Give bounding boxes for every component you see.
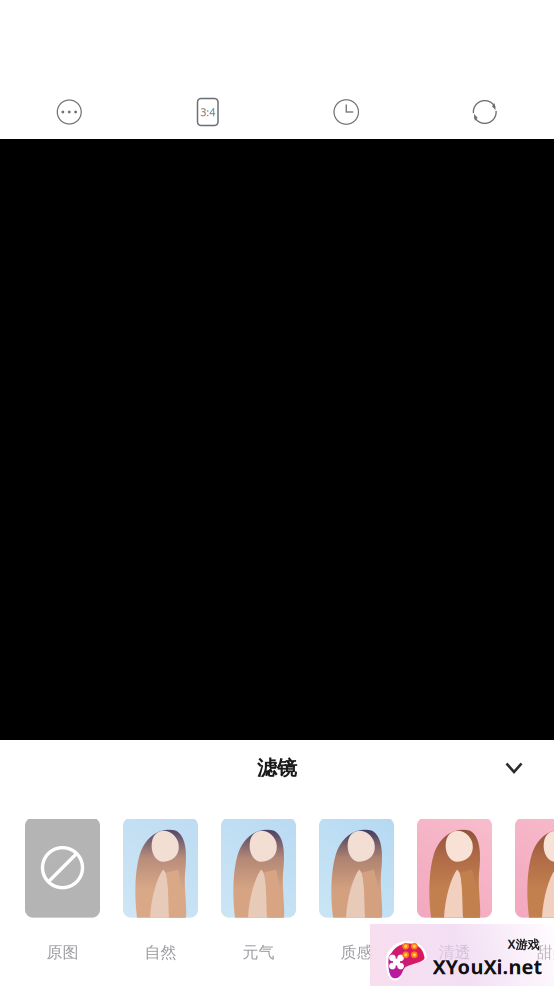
button[interactable]: 甜美	[515, 818, 554, 962]
button[interactable]: Aspect ratio 3 to 4	[138, 94, 277, 130]
staticText: 清透	[438, 943, 470, 962]
button[interactable]: 清透	[417, 818, 492, 962]
staticText: X游戏	[507, 936, 539, 952]
button[interactable]: More options	[0, 94, 138, 130]
staticText: XYouXi.net	[432, 953, 542, 980]
button[interactable]: 质感	[319, 818, 394, 962]
staticText: 自然	[144, 943, 176, 962]
button[interactable]: 自然	[123, 818, 198, 962]
staticText: 质感	[340, 943, 372, 962]
staticText: 3:4	[200, 105, 215, 119]
button[interactable]: 原图	[25, 818, 100, 962]
staticText: 甜美	[536, 943, 554, 962]
button[interactable]: Timer	[277, 94, 415, 130]
staticText: 滤镜	[257, 756, 297, 780]
staticText: 元气	[242, 943, 274, 962]
button[interactable]: 元气	[221, 818, 296, 962]
button[interactable]: Collapse filters	[496, 750, 532, 786]
button[interactable]: Switch camera	[415, 94, 554, 130]
staticText: 原图	[46, 943, 78, 962]
